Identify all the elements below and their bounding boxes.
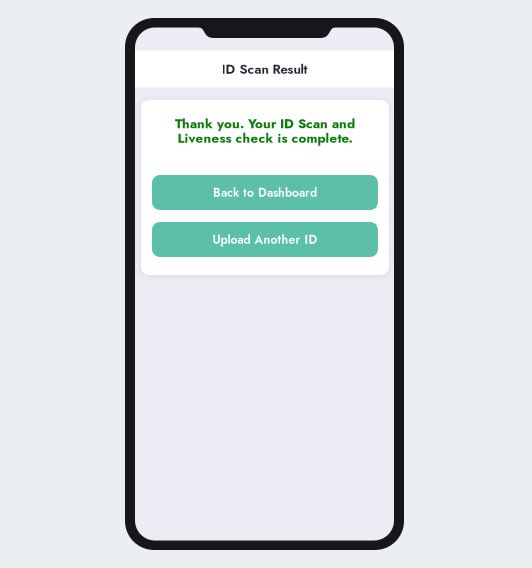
staticText: Back to Dashboard <box>213 184 317 201</box>
staticText: Liveness check is complete. <box>177 128 352 148</box>
button[interactable]: Back to Dashboard <box>152 175 378 210</box>
staticText: ID Scan Result <box>221 59 307 79</box>
staticText: Thank you. Your ID Scan and <box>175 114 355 133</box>
button[interactable]: Upload Another ID <box>152 222 378 257</box>
staticText: Upload Another ID <box>212 231 317 248</box>
